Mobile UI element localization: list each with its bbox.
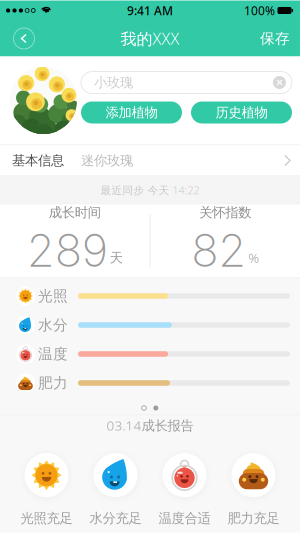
staticText: 成长时间	[49, 204, 101, 221]
staticText: 光照充足	[20, 510, 72, 527]
staticText: 关怀指数	[199, 204, 251, 221]
button[interactable]: 添加植物	[81, 101, 182, 123]
button[interactable]: 基本信息	[0, 145, 300, 175]
staticText: 最近同步 今天 14:22	[100, 183, 199, 197]
staticText: 9:41 AM	[127, 2, 173, 18]
staticText: 水分	[38, 316, 68, 334]
staticText: 温度	[38, 345, 68, 363]
staticText: 温度合适	[158, 510, 210, 527]
staticText: 历史植物	[215, 104, 267, 121]
staticText: 82	[191, 223, 246, 278]
staticText: 肥力	[38, 374, 68, 392]
staticText: 03.14成长报告	[106, 416, 193, 434]
staticText: 小玫瑰	[94, 74, 133, 91]
staticText: 迷你玫瑰	[81, 152, 133, 169]
staticText: %	[248, 249, 259, 266]
button[interactable]: 历史植物	[191, 101, 292, 123]
staticText: 肥力充足	[227, 510, 279, 527]
staticText: 保存	[260, 29, 290, 47]
button[interactable]: 保存	[260, 29, 300, 47]
staticText: 添加植物	[105, 104, 157, 121]
button[interactable]: 小玫瑰	[81, 71, 292, 93]
staticText: 天	[110, 249, 123, 266]
staticText: 我的XXX	[120, 28, 179, 49]
button[interactable]: Back	[9, 23, 39, 53]
staticText: 基本信息	[12, 152, 64, 169]
staticText: 100%	[244, 2, 275, 18]
staticText: 289	[27, 223, 108, 278]
staticText: 水分充足	[89, 510, 141, 527]
staticText: 光照	[38, 287, 68, 305]
